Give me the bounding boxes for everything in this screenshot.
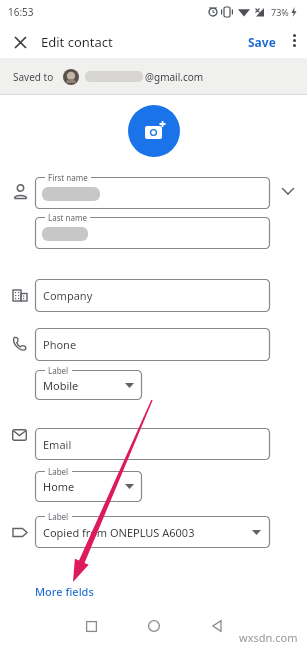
staticText: Mobile xyxy=(43,378,79,393)
staticText: wxsdn.com xyxy=(239,630,298,645)
staticText: Label xyxy=(48,511,69,522)
staticText: Edit contact xyxy=(41,33,113,51)
staticText: Last name xyxy=(48,212,87,223)
button[interactable]: Save xyxy=(248,34,276,50)
button[interactable]: More fields xyxy=(35,584,94,599)
button[interactable]: Home xyxy=(35,471,142,502)
staticText: Home xyxy=(43,479,75,494)
button[interactable] xyxy=(69,604,113,648)
button[interactable]: Mobile xyxy=(35,370,142,400)
button[interactable] xyxy=(128,105,180,157)
staticText: 73% xyxy=(271,6,289,18)
button[interactable]: Copied from ONEPLUS A6003 xyxy=(35,516,270,548)
staticText: Label xyxy=(48,466,69,477)
staticText: Saved to xyxy=(13,70,54,84)
staticText: Copied from ONEPLUS A6003 xyxy=(43,525,195,540)
button[interactable] xyxy=(10,32,30,52)
staticText: 16:53 xyxy=(8,5,34,19)
staticText: Email xyxy=(43,437,72,452)
button[interactable] xyxy=(195,604,239,648)
button[interactable] xyxy=(282,28,306,52)
button[interactable]: Company xyxy=(35,279,270,312)
button[interactable]: Phone xyxy=(35,328,270,361)
staticText: Phone xyxy=(43,337,77,352)
button[interactable]: Saved to xyxy=(0,58,307,95)
staticText: Label xyxy=(48,365,69,376)
staticText: @gmail.com xyxy=(145,70,204,84)
button[interactable] xyxy=(132,604,176,648)
button[interactable]: Email xyxy=(35,428,270,460)
staticText: First name xyxy=(48,172,88,183)
staticText: Company xyxy=(43,288,93,303)
